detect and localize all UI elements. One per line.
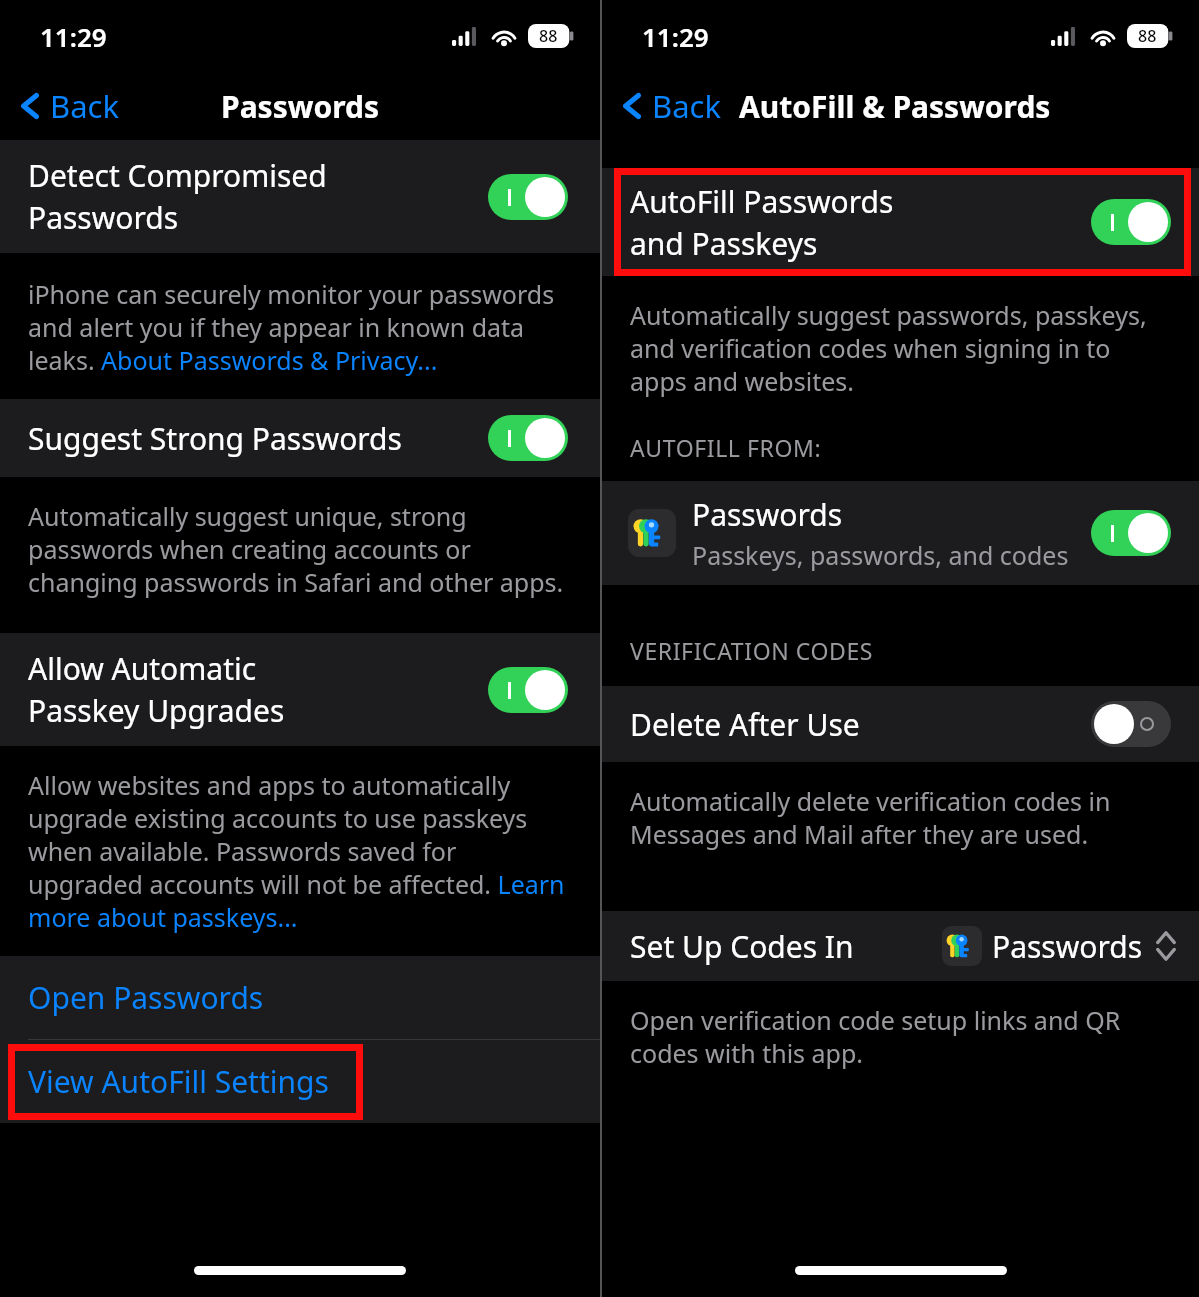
button[interactable]: Switch off	[1091, 701, 1171, 747]
staticText: AUTOFILL FROM:	[630, 432, 1199, 463]
staticText: Automatically suggest passwords, passkey…	[630, 298, 1165, 398]
button[interactable]: Open Passwords	[0, 956, 600, 1039]
staticText: 88	[1138, 25, 1157, 47]
staticText: VERIFICATION CODES	[630, 635, 1199, 666]
staticText: 11:29	[40, 19, 107, 54]
staticText: Automatically suggest unique, strong pas…	[28, 499, 566, 599]
staticText: Passkeys, passwords, and codes	[692, 538, 1069, 572]
staticText: Allow Automatic Passkey Upgrades	[28, 648, 488, 731]
staticText: Detect Compromised Passwords	[28, 155, 488, 238]
staticText: Open Passwords	[28, 977, 264, 1018]
button[interactable]: Set Up Codes In	[602, 911, 1199, 981]
button[interactable]: Back	[0, 85, 131, 127]
staticText: Passwords	[692, 494, 843, 535]
button[interactable]: Switch on	[1091, 510, 1171, 556]
staticText: Suggest Strong Passwords	[28, 418, 488, 459]
staticText: 11:29	[642, 19, 709, 54]
button[interactable]: AutoFill Passwords and Passkeys	[602, 168, 1199, 276]
button[interactable]: Delete After Use	[602, 686, 1199, 762]
staticText: Back	[652, 85, 721, 127]
staticText: Delete After Use	[630, 704, 1091, 745]
staticText: Automatically delete verification codes …	[630, 784, 1165, 851]
button[interactable]: Suggest Strong Passwords	[0, 399, 600, 477]
staticText: AutoFill & Passwords	[739, 86, 1051, 127]
staticText: Back	[50, 85, 119, 127]
staticText: Set Up Codes In	[630, 926, 854, 967]
button[interactable]: Switch on	[488, 415, 568, 461]
button[interactable]: Switch on	[488, 667, 568, 713]
button[interactable]: Back	[616, 85, 727, 127]
staticText: Open verification code setup links and Q…	[630, 1003, 1165, 1070]
staticText: Passwords	[221, 86, 379, 127]
staticText: Passwords	[992, 926, 1143, 967]
button[interactable]: Allow Automatic Passkey Upgrades	[0, 633, 600, 746]
staticText: View AutoFill Settings	[28, 1061, 329, 1102]
staticText: Allow websites and apps to automatically…	[28, 768, 566, 934]
button[interactable]: Detect Compromised Passwords	[0, 140, 600, 253]
button[interactable]: Passwords	[602, 481, 1199, 585]
staticText: iPhone can securely monitor your passwor…	[28, 277, 566, 377]
button[interactable]: Switch on	[1091, 199, 1171, 245]
button[interactable]: View AutoFill Settings	[0, 1040, 600, 1123]
staticText: 88	[539, 25, 558, 47]
button[interactable]: Switch on	[488, 174, 568, 220]
staticText: AutoFill Passwords and Passkeys	[630, 181, 1091, 264]
